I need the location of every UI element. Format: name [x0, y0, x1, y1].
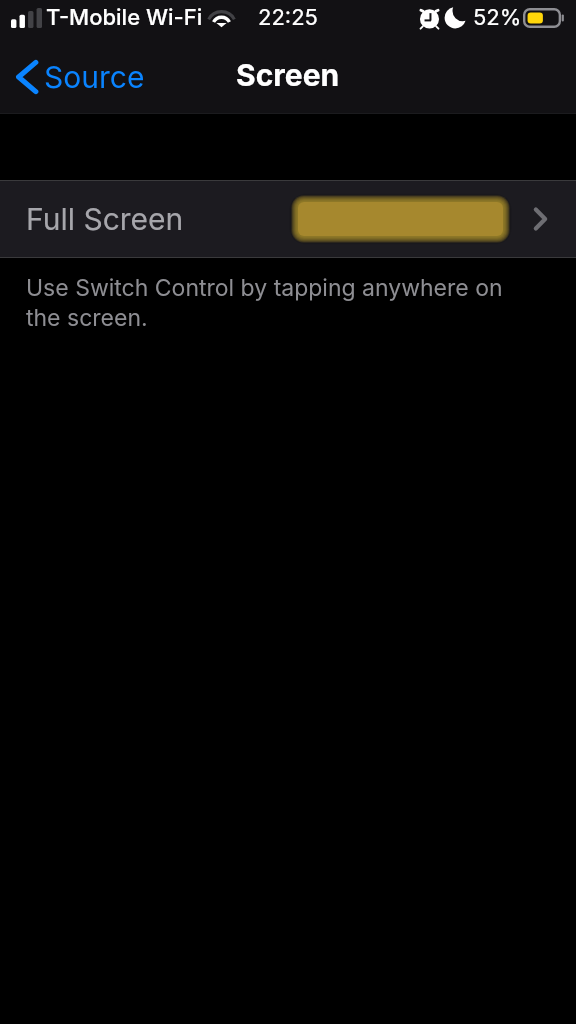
button[interactable]: Full Screen	[0, 181, 576, 257]
staticText: 52%	[473, 4, 522, 31]
button[interactable]: Back to Source	[0, 47, 159, 112]
staticText: T-Mobile Wi-Fi	[46, 4, 203, 31]
staticText: 22:25	[258, 4, 318, 31]
staticText: Use Switch Control by tapping anywhere o…	[26, 274, 503, 332]
staticText: Screen	[236, 57, 340, 93]
staticText: Source	[44, 59, 145, 95]
staticText: Full Screen	[26, 201, 184, 237]
